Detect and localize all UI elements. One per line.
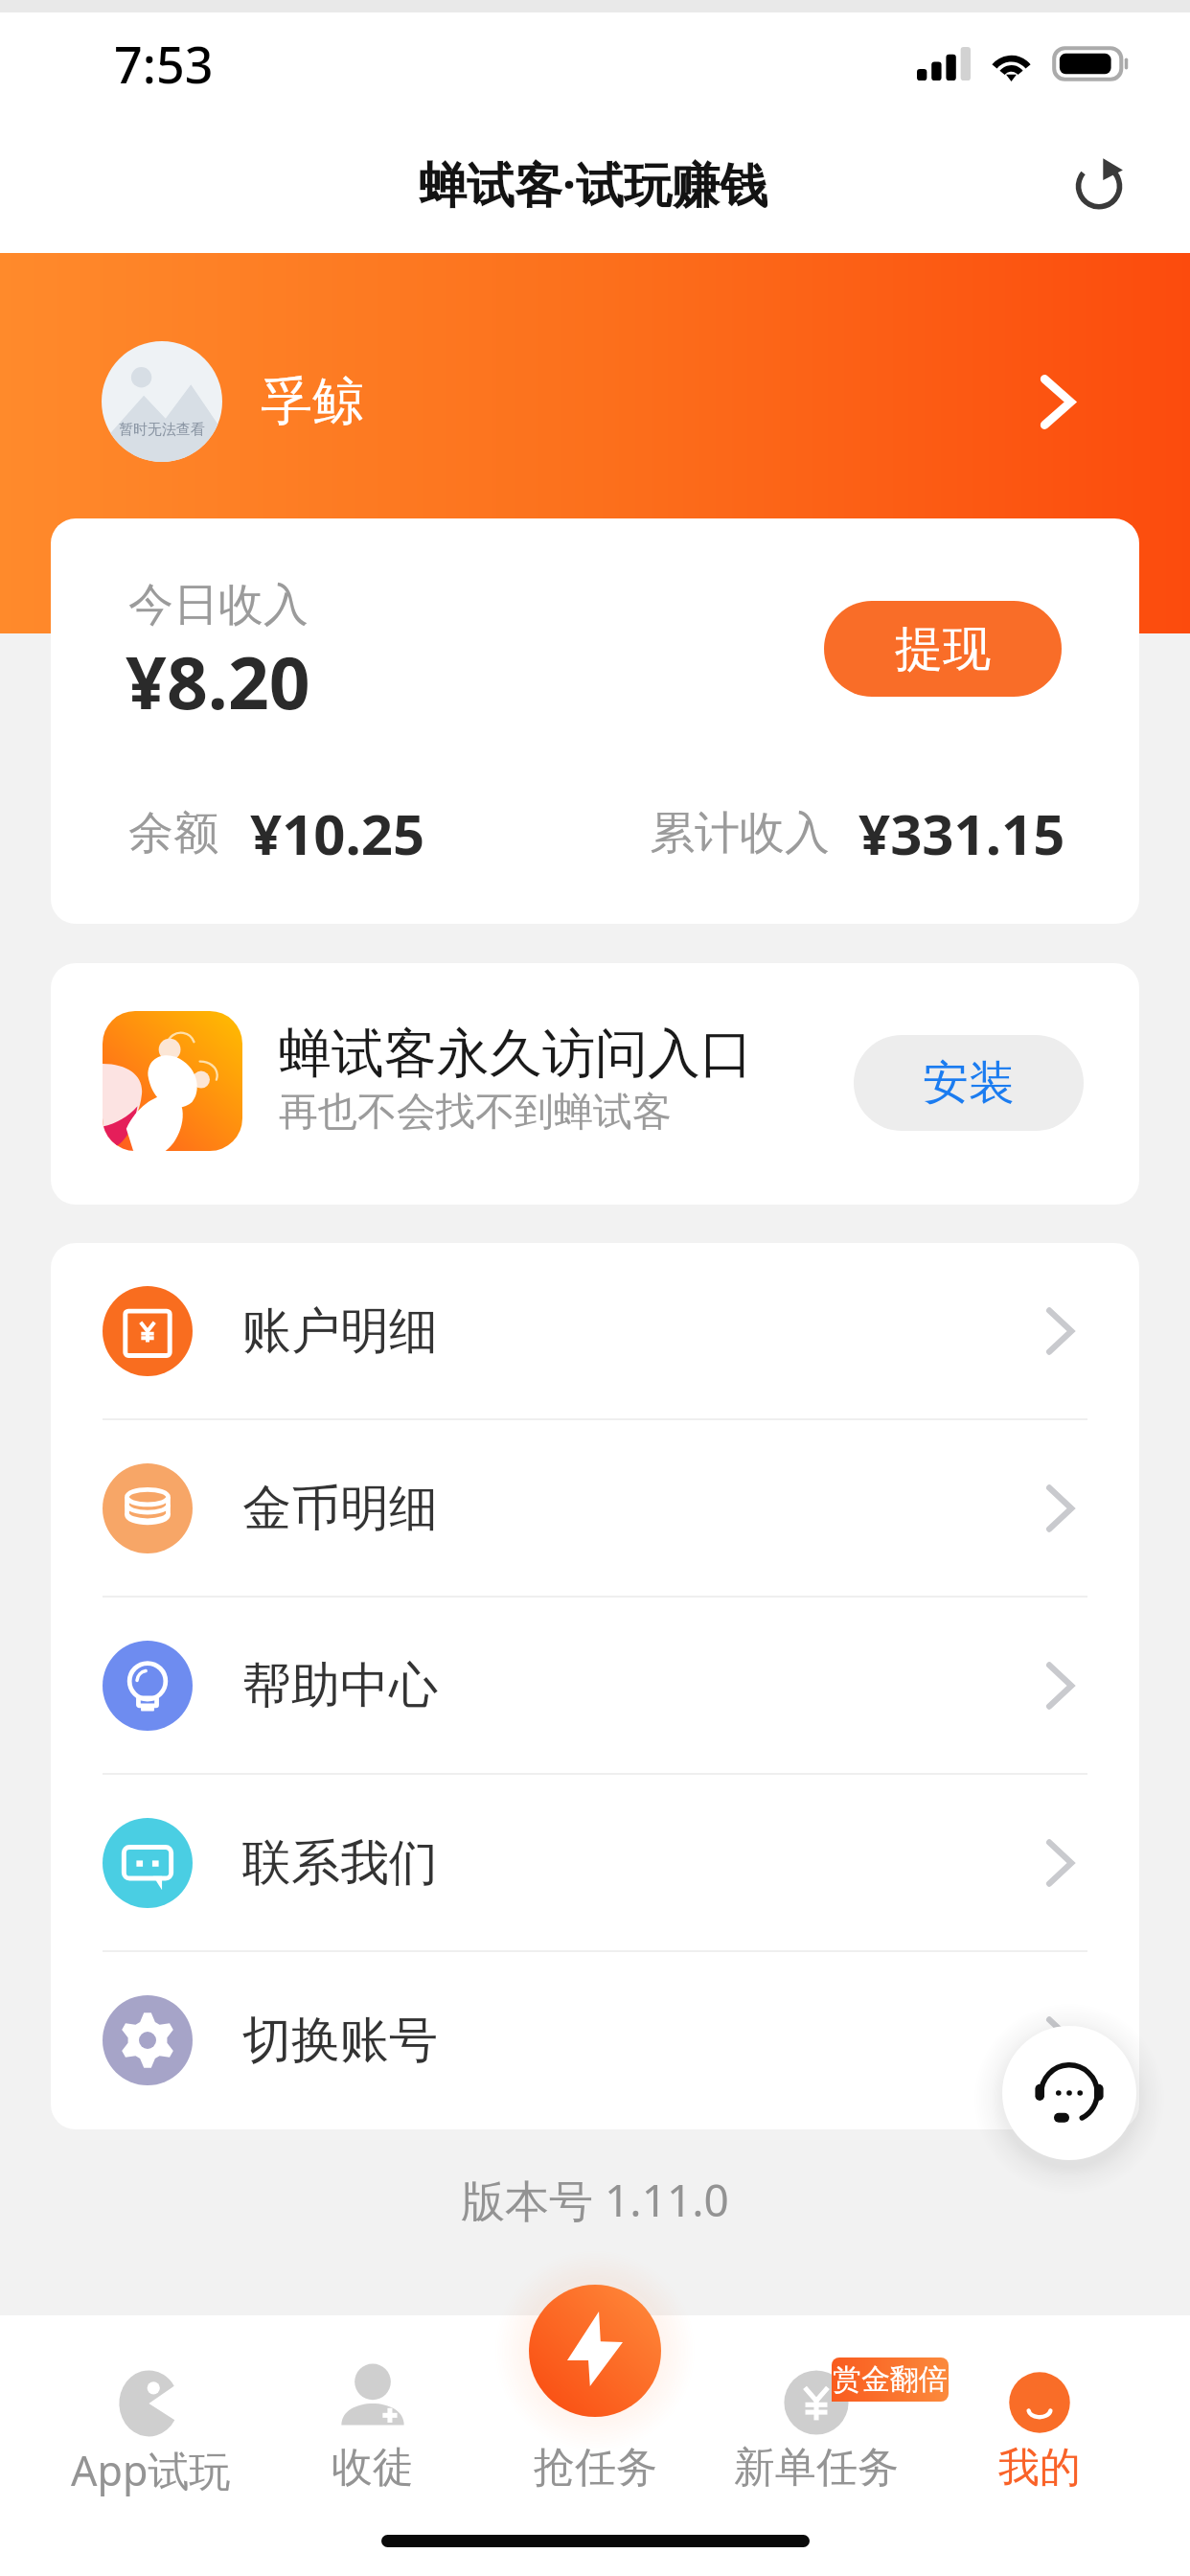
button[interactable]: Refresh	[1055, 135, 1147, 227]
button[interactable]: 蝉试客永久访问入口	[51, 963, 1139, 1205]
staticText: 今日收入	[128, 577, 309, 633]
staticText: 蝉试客永久访问入口	[279, 1021, 753, 1087]
staticText: 帮助中心	[242, 1655, 438, 1716]
staticText: 新单任务	[734, 2442, 899, 2494]
button[interactable]: 抢任务	[529, 2285, 661, 2417]
staticText: 提现	[895, 619, 991, 679]
staticText: App试玩	[71, 2442, 231, 2498]
staticText: 版本号 1.11.0	[0, 2170, 1190, 2230]
staticText: 金币明细	[242, 1478, 438, 1539]
staticText: 安装	[923, 1054, 1015, 1112]
button[interactable]: Customer service	[1002, 2026, 1136, 2160]
staticText: ¥10.25	[250, 795, 425, 871]
staticText: ¥331.15	[858, 795, 1065, 871]
staticText: 收徒	[332, 2442, 414, 2494]
staticText: 暂时无法查看	[119, 421, 205, 439]
button[interactable]: 收徒	[254, 2315, 492, 2513]
button[interactable]: App试玩	[32, 2315, 269, 2513]
button[interactable]: 金币明细	[51, 1420, 1139, 1598]
button[interactable]: 新单任务	[698, 2315, 935, 2513]
staticText: 切换账号	[242, 2010, 438, 2071]
staticText: 余额	[128, 805, 218, 862]
button[interactable]: 帮助中心	[51, 1598, 1139, 1775]
button[interactable]: 账户明细	[51, 1243, 1139, 1420]
staticText: 账户明细	[242, 1300, 438, 1362]
button[interactable]: 切换账号	[51, 1952, 1139, 2127]
staticText: 联系我们	[242, 1832, 438, 1894]
button[interactable]: 安装	[854, 1035, 1084, 1131]
staticText: 蝉试客·试玩赚钱	[419, 151, 768, 217]
button[interactable]: 提现	[824, 601, 1062, 697]
button[interactable]: 暂时无法查看	[0, 329, 1190, 474]
button[interactable]: 抢任务	[476, 2315, 714, 2513]
staticText: 再也不会找不到蝉试客	[279, 1088, 672, 1138]
staticText: 7:53	[114, 30, 214, 98]
button[interactable]: 联系我们	[51, 1775, 1139, 1952]
staticText: 累计收入	[650, 805, 830, 862]
staticText: ¥8.20	[126, 632, 310, 730]
staticText: 孚鲸	[261, 369, 364, 434]
staticText: 抢任务	[534, 2442, 657, 2494]
staticText: 我的	[998, 2442, 1081, 2494]
staticText: 赏金翻倍	[833, 2361, 948, 2398]
button[interactable]: 我的	[921, 2315, 1158, 2513]
